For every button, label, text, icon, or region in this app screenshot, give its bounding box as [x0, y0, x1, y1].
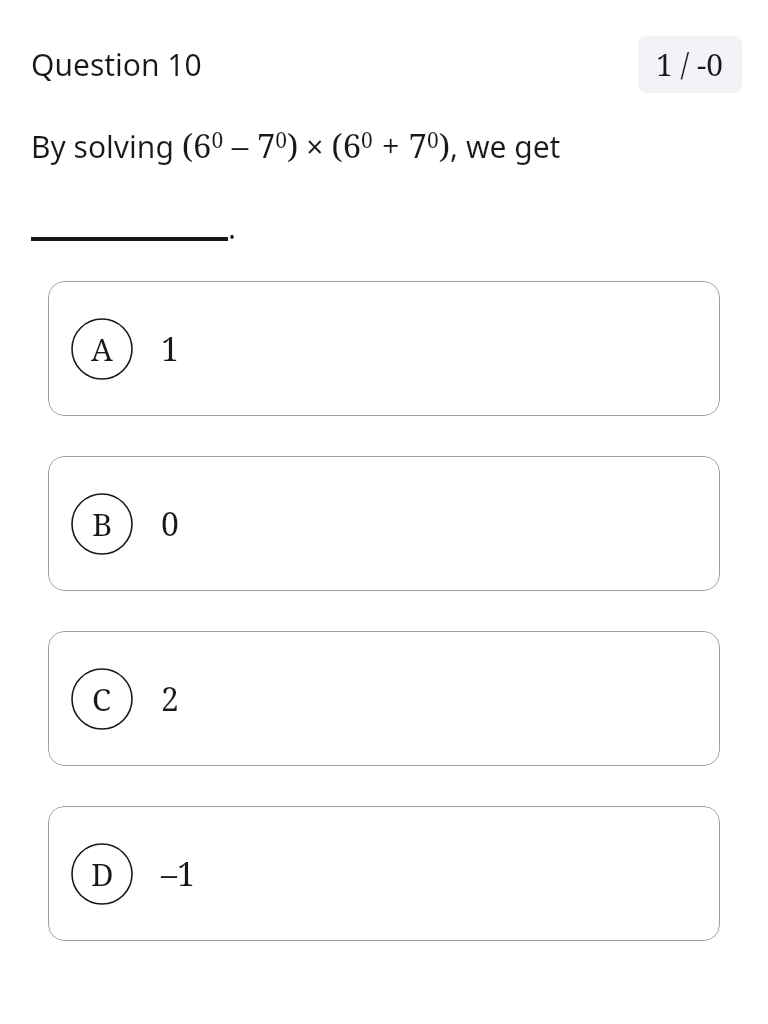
staticText: Question 10 — [31, 44, 202, 85]
staticText: . — [228, 207, 237, 248]
button[interactable]: A — [48, 281, 720, 416]
staticText: 2 — [161, 677, 179, 721]
button[interactable]: C — [48, 631, 720, 766]
staticText: B — [92, 503, 113, 545]
staticText: 0 — [161, 502, 179, 546]
staticText: –1 — [161, 852, 195, 896]
staticText: By solving (60 – 70) × (60 + 70), we get — [31, 123, 561, 168]
staticText: D — [91, 853, 114, 895]
staticText: 1 — [161, 327, 179, 371]
staticText: A — [91, 328, 113, 370]
staticText: C — [92, 678, 112, 720]
button[interactable]: Score — [638, 36, 742, 93]
staticText: 1 / -0 — [656, 44, 724, 85]
button[interactable]: B — [48, 456, 720, 591]
button[interactable]: D — [48, 806, 720, 941]
